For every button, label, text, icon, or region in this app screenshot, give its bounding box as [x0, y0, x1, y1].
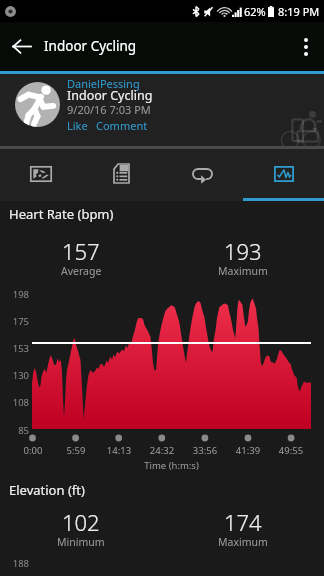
staticText: 175	[0, 315, 29, 328]
staticText: 198	[0, 288, 29, 301]
staticText: Minimum	[57, 535, 105, 549]
button[interactable]: Navigate up	[0, 22, 44, 71]
button[interactable]: More options	[288, 22, 324, 71]
staticText: 102	[62, 507, 100, 537]
staticText: 0:00	[11, 444, 55, 457]
staticText: 33:56	[183, 444, 227, 457]
staticText: 174	[224, 507, 262, 537]
button[interactable]: Details	[81, 149, 162, 198]
staticText: Indoor Cycling	[44, 37, 137, 55]
staticText: 193	[224, 236, 262, 266]
button[interactable]: Graphs	[243, 149, 324, 198]
staticText: Average	[61, 264, 102, 278]
staticText: Maximum	[218, 535, 268, 549]
staticText: Maximum	[218, 264, 268, 278]
staticText: Time (h:m:s)	[32, 459, 311, 472]
button[interactable]: Map	[0, 149, 81, 198]
staticText: 108	[0, 396, 29, 409]
staticText: 157	[62, 236, 100, 266]
staticText: 130	[0, 369, 29, 382]
staticText: Indoor Cycling	[67, 87, 153, 104]
staticText: 188	[0, 557, 29, 570]
button[interactable]: DanielPessing	[0, 74, 324, 146]
staticText: 62%	[244, 4, 266, 19]
button[interactable]: Laps	[162, 149, 243, 198]
staticText: 5:59	[54, 444, 98, 457]
staticText: 41:39	[226, 444, 270, 457]
staticText: DanielPessing	[67, 76, 140, 91]
button[interactable]: Comment	[96, 118, 148, 133]
staticText: Heart Rate (bpm)	[9, 205, 114, 223]
staticText: 153	[0, 342, 29, 355]
staticText: 9/20/16 7:03 PM	[67, 102, 151, 117]
staticText: 49:55	[269, 444, 313, 457]
staticText: 8:19 PM	[278, 4, 320, 19]
staticText: Elevation (ft)	[9, 481, 85, 499]
staticText: 24:32	[140, 444, 184, 457]
staticText: 85	[0, 424, 29, 437]
staticText: 14:13	[97, 444, 141, 457]
button[interactable]: Like	[67, 118, 88, 133]
